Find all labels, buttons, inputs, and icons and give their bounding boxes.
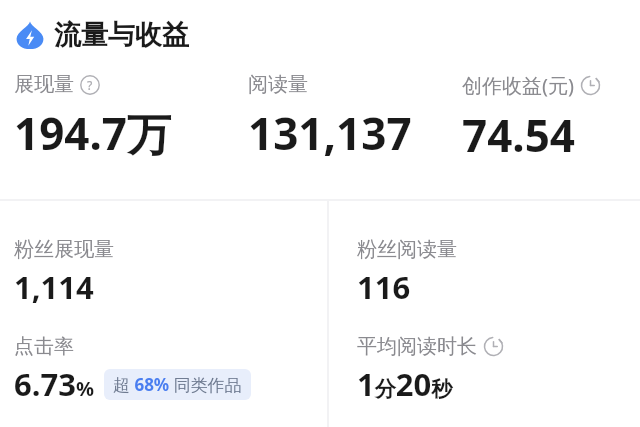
button[interactable]: 阅读量	[248, 72, 462, 163]
staticText: 展现量	[14, 72, 74, 97]
staticText: ?	[87, 77, 93, 93]
staticText: 1,114	[14, 266, 94, 308]
button[interactable]: 数据更新时间说明	[483, 336, 504, 357]
staticText: 粉丝阅读量	[357, 237, 457, 262]
button[interactable]: 创作收益(元)	[462, 72, 640, 165]
staticText: 流量与收益	[54, 18, 189, 52]
staticText: 平均阅读时长	[357, 334, 477, 359]
staticText: 粉丝展现量	[14, 237, 114, 262]
button[interactable]: 帮助说明	[80, 75, 100, 95]
staticText: 131,137	[248, 103, 412, 163]
staticText: 74.54	[462, 105, 576, 165]
button[interactable]: 数据更新时间说明	[580, 75, 601, 96]
staticText: 超 68% 同类作品	[113, 373, 242, 396]
staticText: 6.73%	[14, 363, 94, 405]
button[interactable]: 粉丝阅读量	[357, 237, 457, 308]
staticText: 194.7万	[14, 103, 172, 163]
staticText: 阅读量	[248, 72, 308, 97]
staticText: 116	[357, 266, 411, 308]
button[interactable]: 平均阅读时长	[357, 334, 504, 405]
staticText: 1分20秒	[357, 363, 453, 405]
button[interactable]: 粉丝展现量	[14, 237, 114, 308]
button[interactable]: 流量与收益	[16, 18, 189, 52]
button[interactable]: 展现量	[14, 72, 248, 163]
staticText: 创作收益(元)	[462, 72, 574, 99]
button[interactable]: 超 68% 同类作品	[104, 369, 251, 400]
button[interactable]: 点击率	[14, 334, 251, 405]
staticText: 点击率	[14, 334, 74, 359]
